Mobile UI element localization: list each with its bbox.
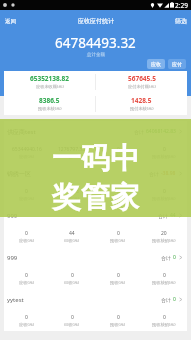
staticText: 应收(元) [19, 280, 35, 286]
staticText: 65352138.82 [30, 74, 70, 83]
staticText: 锦绣一区 [7, 170, 31, 178]
staticText: 65344940.16 [12, 146, 42, 153]
staticText: 预收(元) [110, 322, 126, 328]
staticText: 应付 [172, 61, 182, 67]
staticText: 预付未核(元) [130, 106, 154, 112]
staticText: 预收核销(元) [152, 322, 176, 328]
staticText: 999 [7, 212, 18, 220]
staticText: 0 [117, 230, 120, 237]
button[interactable]: 应付 [168, 59, 186, 69]
staticText: 999 [7, 254, 18, 262]
staticText: 应收 [151, 61, 161, 67]
staticText: 0 [117, 146, 120, 153]
staticText: 0 [71, 272, 74, 279]
button[interactable]: 999 [4, 247, 187, 289]
staticText: 合计 [158, 213, 168, 219]
staticText: 预收(元) [110, 196, 126, 202]
button[interactable]: 8386.5 [4, 93, 95, 115]
staticText: 567645.5 [128, 74, 156, 83]
staticText: 奖管家 [52, 179, 139, 216]
staticText: 44 [170, 212, 176, 219]
staticText: 一码中 [52, 140, 139, 177]
staticText: 0 [173, 254, 176, 261]
staticText: 0 [117, 272, 120, 279]
staticText: 应收应付统计 [78, 17, 114, 25]
staticText: 44 [69, 230, 75, 237]
staticText: 0 [173, 296, 176, 303]
staticText: 应付未付额(元) [128, 84, 156, 90]
staticText: 0 [163, 314, 166, 321]
staticText: 预收核销(元) [152, 238, 176, 244]
button[interactable]: 65352138.82 [4, 71, 95, 93]
staticText: 64784493.32 [55, 34, 136, 52]
staticText: 64068142.83 [146, 128, 176, 135]
button[interactable]: 返回 [0, 13, 21, 30]
staticText: 预收核销(元) [152, 280, 176, 286]
button[interactable]: 567645.5 [96, 71, 187, 93]
staticText: 预收未核(元) [38, 106, 62, 112]
staticText: 2:29 [175, 1, 188, 10]
staticText: 0 [25, 314, 28, 321]
staticText: 应收(元) [19, 238, 35, 244]
staticText: 已收(元) [64, 238, 80, 244]
staticText: 应收(元) [19, 322, 35, 328]
staticText: 预收(元) [110, 280, 126, 286]
staticText: 0 [25, 272, 28, 279]
staticText: 已收(元) [64, 154, 80, 160]
staticText: 0 [71, 314, 74, 321]
staticText: yytest [7, 296, 24, 304]
staticText: 返回 [5, 18, 16, 25]
staticText: 0 [117, 314, 120, 321]
staticText: 供应商test [7, 128, 36, 136]
staticText: 0 [25, 230, 28, 237]
staticText: 38.98 [66, 188, 79, 195]
button[interactable]: 供应商test [4, 121, 187, 163]
staticText: 合计 [161, 255, 171, 261]
staticText: 1276797.33 [58, 146, 86, 153]
staticText: 应收未收额(元) [36, 84, 64, 90]
staticText: -38.98 [161, 170, 176, 177]
staticText: 1428.5 [131, 96, 152, 105]
staticText: 8386.5 [39, 96, 60, 105]
button[interactable]: 筛选 [170, 12, 191, 30]
staticText: 预收(元) [110, 238, 126, 244]
button[interactable]: 锦绣一区 [4, 163, 187, 205]
staticText: 0 [163, 272, 166, 279]
staticText: 合计 [161, 297, 171, 303]
staticText: 0 [117, 188, 120, 195]
staticText: 已收(元) [64, 280, 80, 286]
staticText: 已收(元) [64, 322, 80, 328]
button[interactable]: 999 [4, 205, 187, 247]
staticText: 筛选 [175, 17, 187, 25]
staticText: 已收(元) [64, 196, 80, 202]
staticText: 20 [161, 230, 167, 237]
button[interactable]: 1428.5 [96, 93, 187, 115]
button[interactable]: 应收 [147, 59, 165, 69]
button[interactable]: yytest [4, 289, 187, 331]
staticText: 预收(元) [110, 154, 126, 160]
staticText: 总计金额 [87, 52, 105, 58]
